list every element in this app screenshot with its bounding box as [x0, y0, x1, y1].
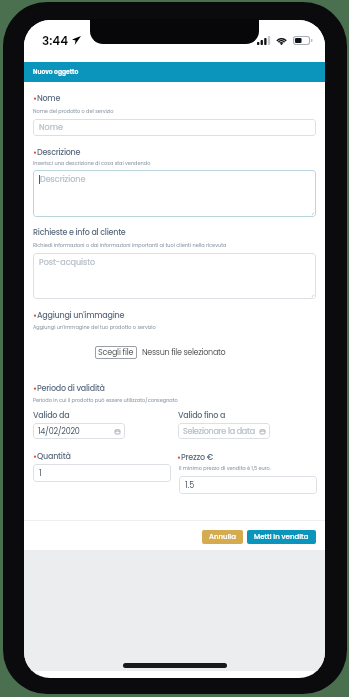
- staticText: Inserisci una descrizione di cosa stai v…: [33, 160, 151, 167]
- staticText: 1.5: [185, 480, 195, 491]
- staticText: Richiedi informazioni o dai informazioni…: [33, 242, 227, 249]
- staticText: 14/02/2020: [38, 426, 80, 437]
- button[interactable]: Descrizione: [33, 170, 316, 217]
- other: Select date: [260, 429, 265, 434]
- staticText: Descrizione: [40, 174, 86, 185]
- button[interactable]: Metti in vendita: [247, 530, 316, 544]
- staticText: 1: [39, 468, 42, 479]
- staticText: Quantità: [37, 451, 71, 462]
- button[interactable]: Post-acquisto: [33, 253, 316, 299]
- staticText: Valido da: [33, 410, 70, 421]
- staticText: Nome: [37, 93, 61, 104]
- staticText: Il minimo prezzo di vendita è 1,5 euro.: [179, 465, 271, 472]
- other: Select date: [115, 429, 120, 434]
- staticText: Nessun file selezionato: [142, 347, 226, 358]
- staticText: Richieste e info al cliente: [33, 227, 126, 238]
- button[interactable]: 1.5: [179, 476, 317, 494]
- staticText: Periodo di validità: [37, 383, 105, 394]
- button[interactable]: Nome: [33, 119, 316, 136]
- staticText: Periodo in cui il prodotto può essere ut…: [33, 397, 178, 404]
- staticText: Nome: [39, 122, 63, 133]
- staticText: Selezionare la data: [183, 426, 255, 437]
- staticText: Scegli file: [98, 347, 134, 358]
- button[interactable]: 14/02/2020: [33, 423, 125, 439]
- staticText: Descrizione: [37, 147, 81, 158]
- button[interactable]: 1: [33, 464, 171, 482]
- staticText: Prezzo €: [181, 452, 213, 463]
- staticText: Valido fino a: [178, 410, 226, 421]
- button[interactable]: Selezionare la data: [178, 423, 270, 439]
- staticText: Annulla: [209, 532, 236, 542]
- staticText: 3:44: [42, 32, 69, 49]
- staticText: Aggiungi un'immagine del tuo prodotto o …: [33, 324, 156, 331]
- button[interactable]: Scegli file: [95, 346, 137, 359]
- staticText: Post-acquisto: [39, 257, 96, 268]
- staticText: Aggiungi un'immagine: [37, 310, 125, 321]
- staticText: Metti in vendita: [254, 532, 309, 542]
- staticText: Nuovo oggetto: [33, 68, 79, 76]
- staticText: Nome del prodotto o del servizio: [33, 108, 114, 115]
- button[interactable]: Annulla: [202, 530, 243, 544]
